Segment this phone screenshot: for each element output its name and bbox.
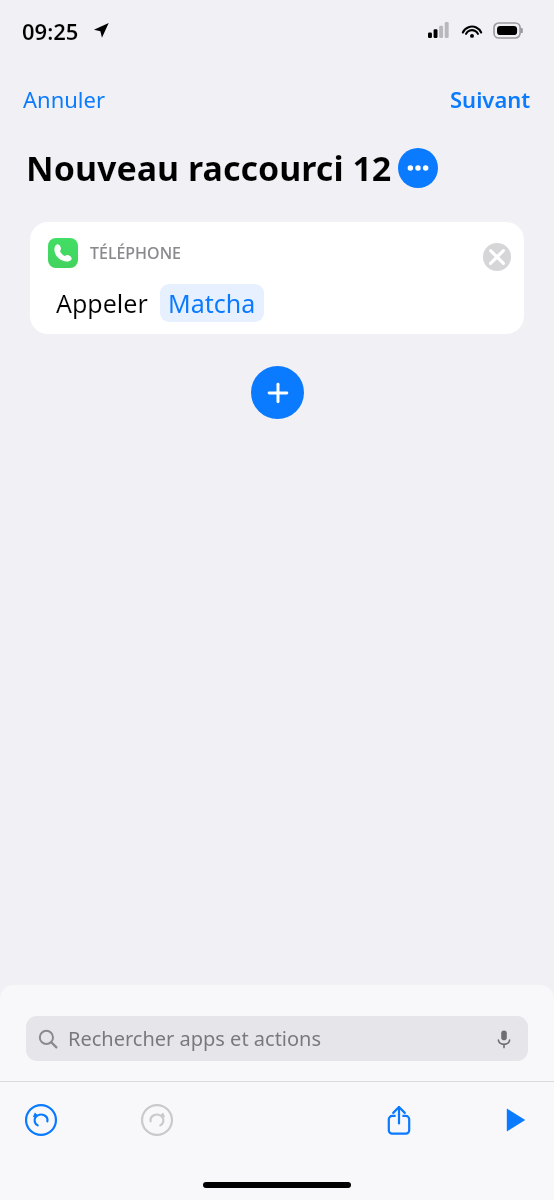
- button[interactable]: Partager: [375, 1096, 423, 1144]
- button[interactable]: Rétablir: [133, 1096, 181, 1144]
- staticText: 09:25: [22, 16, 79, 46]
- button[interactable]: Suivant: [439, 79, 542, 119]
- staticText: Matcha: [168, 286, 256, 320]
- staticText: Nouveau raccourci 12: [26, 145, 392, 191]
- staticText: Annuler: [23, 84, 106, 114]
- staticText: Appeler: [56, 286, 148, 320]
- button[interactable]: TÉLÉPHONE: [30, 222, 524, 334]
- button[interactable]: Annuler la modification: [17, 1096, 65, 1144]
- staticText: Suivant: [450, 84, 531, 114]
- button[interactable]: Options du raccourci: [398, 148, 438, 188]
- button[interactable]: Annuler: [12, 79, 117, 119]
- button[interactable]: Dictée: [488, 1023, 520, 1055]
- button[interactable]: Exécuter: [491, 1096, 539, 1144]
- button[interactable]: Supprimer l'action: [480, 240, 514, 274]
- button[interactable]: Ajouter une action: [251, 366, 304, 419]
- staticText: TÉLÉPHONE: [90, 242, 181, 264]
- button[interactable]: Rechercher apps et actions: [26, 1016, 528, 1061]
- button[interactable]: Matcha: [160, 284, 264, 322]
- staticText: Rechercher apps et actions: [68, 1025, 322, 1052]
